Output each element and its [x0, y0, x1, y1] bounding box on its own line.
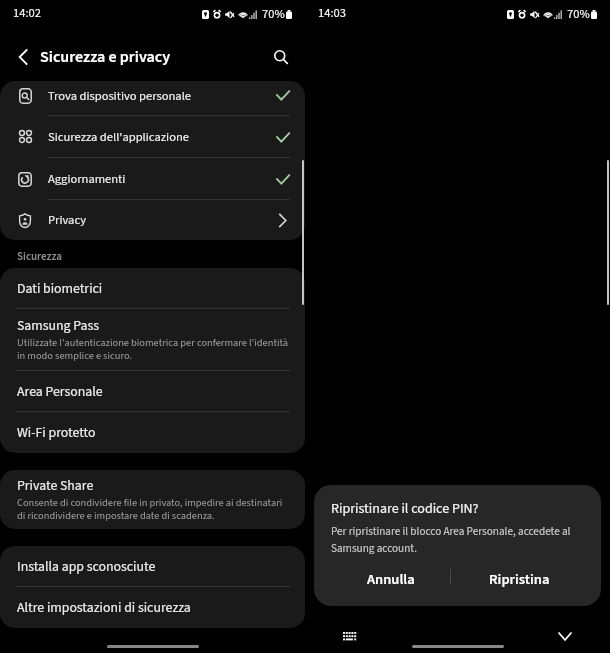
button[interactable]: Aggiornamenti: [0, 158, 305, 200]
staticText: Samsung Pass: [17, 316, 100, 336]
staticText: 70%: [262, 5, 285, 23]
staticText: Sicurezza e privacy: [40, 46, 171, 69]
staticText: Sicurezza: [17, 249, 62, 265]
staticText: Utilizzate l'autenticazione biometrica p…: [17, 335, 288, 363]
staticText: 70%: [567, 5, 590, 23]
staticText: 14:02: [13, 4, 41, 22]
staticText: Privacy: [48, 211, 86, 229]
button[interactable]: Annulla: [330, 556, 451, 602]
button[interactable]: Dati biometrici: [0, 268, 305, 309]
button[interactable]: Hide keyboard: [553, 624, 577, 648]
button[interactable]: Wi-Fi protetto: [0, 412, 305, 453]
button[interactable]: Installa app sconosciute: [0, 546, 305, 587]
staticText: Dati biometrici: [17, 279, 103, 299]
staticText: Ripristina: [489, 569, 550, 590]
staticText: Sicurezza dell'applicazione: [48, 128, 189, 146]
staticText: Wi-Fi protetto: [17, 423, 96, 443]
staticText: Aggiornamenti: [48, 170, 126, 188]
button[interactable]: Ripristina: [452, 556, 586, 602]
staticText: Installa app sconosciute: [17, 557, 156, 577]
button[interactable]: Back: [8, 42, 38, 72]
staticText: Per ripristinare il blocco Area Personal…: [331, 524, 571, 556]
staticText: Private Share: [17, 476, 94, 496]
button[interactable]: Trova dispositivo personale: [0, 81, 305, 116]
button[interactable]: Privacy: [0, 200, 305, 240]
staticText: Altre impostazioni di sicurezza: [17, 598, 191, 618]
button[interactable]: Area Personale: [0, 371, 305, 412]
staticText: Annulla: [367, 569, 415, 590]
button[interactable]: Altre impostazioni di sicurezza: [0, 587, 305, 628]
button[interactable]: Samsung Pass: [0, 309, 305, 371]
staticText: Ripristinare il codice PIN?: [331, 499, 479, 519]
button[interactable]: Sicurezza dell'applicazione: [0, 116, 305, 158]
staticText: Consente di condividere file in privato,…: [17, 495, 283, 523]
button[interactable]: Private Share: [0, 470, 305, 529]
staticText: Trova dispositivo personale: [48, 87, 192, 105]
staticText: 14:03: [318, 4, 346, 22]
button[interactable]: Show keyboard: [338, 624, 362, 648]
staticText: Area Personale: [17, 382, 103, 402]
button[interactable]: Search: [266, 42, 296, 72]
